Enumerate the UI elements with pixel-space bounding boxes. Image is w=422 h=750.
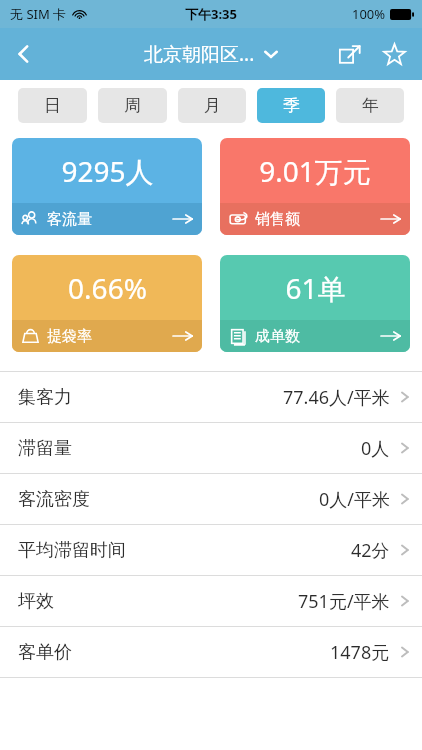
button[interactable]: 9295人 [12,138,202,235]
staticText: 下午3:35 [185,5,237,23]
button[interactable]: 日 [18,88,87,123]
staticText: 0人/平米 [319,487,390,512]
staticText: 客流密度 [18,488,90,511]
button[interactable]: 北京朝阳区... [144,41,279,67]
staticText: 1478元 [330,640,390,665]
button[interactable]: 客流密度 [0,474,422,524]
staticText: 61单 [285,269,346,307]
staticText: 客单价 [18,641,72,664]
staticText: 42分 [351,538,390,563]
staticText: 0人 [361,436,390,461]
staticText: 滞留量 [18,437,72,460]
staticText: 客流量 [47,210,92,229]
staticText: 销售额 [255,210,300,229]
staticText: 日 [44,95,61,116]
button[interactable]: 61单 [220,255,410,352]
staticText: 提袋率 [47,327,92,346]
button[interactable]: Favorite [372,32,416,76]
staticText: 北京朝阳区... [144,41,255,67]
button[interactable]: 周 [98,88,167,123]
staticText: 9295人 [61,152,154,190]
button[interactable]: 0.66% [12,255,202,352]
staticText: 平均滞留时间 [18,539,126,562]
staticText: 9.01万元 [259,152,371,190]
button[interactable]: 滞留量 [0,423,422,473]
staticText: 坪效 [18,590,54,613]
staticText: 无 SIM 卡 [10,5,67,23]
staticText: 成单数 [255,327,300,346]
staticText: 751元/平米 [298,589,390,614]
staticText: 0.66% [68,269,147,307]
staticText: 集客力 [18,386,72,409]
button[interactable]: Share [328,32,372,76]
staticText: 100% [352,5,386,23]
staticText: 年 [362,95,379,116]
staticText: 77.46人/平米 [283,385,390,410]
button[interactable]: 集客力 [0,372,422,422]
staticText: 月 [204,95,221,116]
staticText: 季 [283,95,300,116]
button[interactable]: 坪效 [0,576,422,626]
button[interactable]: 年 [336,88,404,123]
button[interactable]: 平均滞留时间 [0,525,422,575]
staticText: 周 [124,95,141,116]
button[interactable]: Back [0,30,48,78]
button[interactable]: 月 [178,88,246,123]
button[interactable]: 客单价 [0,627,422,677]
button[interactable]: 9.01万元 [220,138,410,235]
button[interactable]: 季 [257,88,325,123]
